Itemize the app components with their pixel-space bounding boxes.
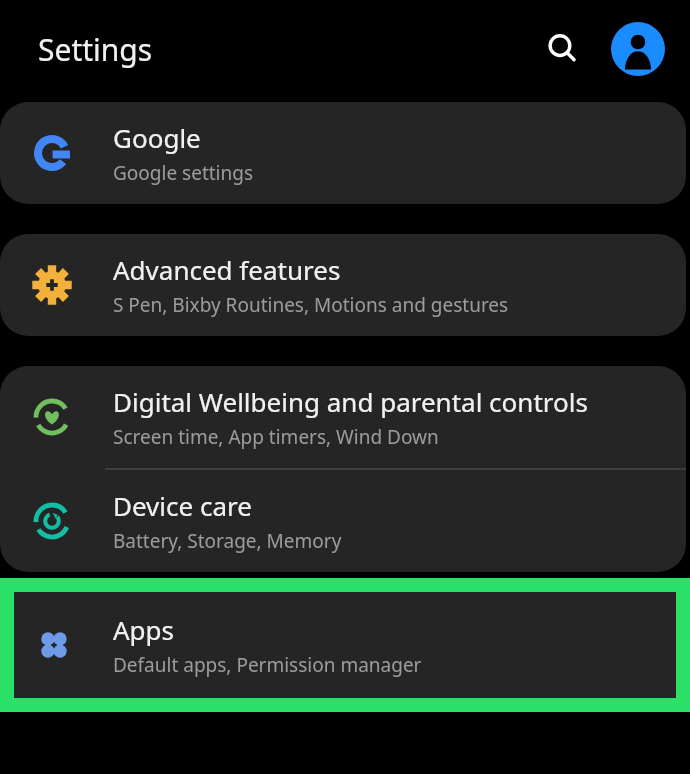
staticText: S Pen, Bixby Routines, Motions and gestu…: [113, 292, 509, 318]
button[interactable]: Google: [0, 102, 686, 204]
staticText: Device care: [113, 488, 252, 523]
button[interactable]: Digital Wellbeing and parental controls: [0, 366, 686, 468]
button[interactable]: Apps: [14, 592, 676, 698]
staticText: Battery, Storage, Memory: [113, 528, 342, 554]
staticText: Advanced features: [113, 252, 341, 287]
button[interactable]: Search: [536, 23, 588, 75]
button[interactable]: Device care: [0, 470, 686, 572]
button[interactable]: Account: [610, 21, 666, 77]
staticText: Settings: [38, 29, 153, 70]
staticText: Screen time, App timers, Wind Down: [113, 424, 439, 450]
staticText: Google settings: [113, 160, 254, 186]
staticText: Digital Wellbeing and parental controls: [113, 384, 588, 419]
staticText: Default apps, Permission manager: [113, 652, 422, 678]
button[interactable]: Advanced features: [0, 234, 686, 336]
staticText: Apps: [113, 612, 175, 647]
staticText: Google: [113, 120, 201, 155]
